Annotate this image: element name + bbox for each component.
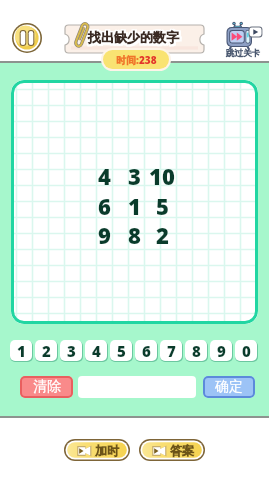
staticText: 跳过关卡 <box>226 48 260 59</box>
staticText: 4 <box>98 161 111 187</box>
staticText: 时间: <box>116 53 139 67</box>
staticText: 1 <box>17 341 26 361</box>
staticText: 9 <box>217 341 226 361</box>
staticText: 找出缺少的数字 <box>88 29 179 45</box>
button[interactable]: 清除 <box>20 376 73 398</box>
staticText: 加时 <box>95 443 119 458</box>
staticText: 找出缺少的数字 <box>90 29 181 45</box>
button[interactable]: 2 <box>35 340 58 362</box>
staticText: 找出缺少的数字 <box>90 31 181 47</box>
staticText: 2 <box>42 341 51 361</box>
staticText: 8 <box>128 220 141 246</box>
staticText: 5 <box>117 341 126 361</box>
staticText: 1 <box>128 191 141 217</box>
button[interactable]: 7 <box>160 340 183 362</box>
button[interactable]: 6 <box>135 340 158 362</box>
staticText: 8 <box>192 341 201 361</box>
staticText: 0 <box>242 341 251 361</box>
staticText: 6 <box>98 191 111 217</box>
staticText: 清除 <box>33 378 61 396</box>
staticText: 找出缺少的数字 <box>88 31 179 47</box>
staticText: 3 <box>128 161 141 187</box>
staticText: 找出缺少的数字 <box>87 31 178 47</box>
staticText: 找出缺少的数字 <box>87 29 178 45</box>
staticText: 9 <box>98 220 111 246</box>
button[interactable]: Skip level <box>222 16 269 60</box>
button[interactable]: 0 <box>235 340 258 362</box>
button[interactable]: 1 <box>10 340 33 362</box>
staticText: 7 <box>167 341 176 361</box>
staticText: 4 <box>92 341 101 361</box>
staticText: 答案 <box>170 443 194 458</box>
staticText: 6 <box>142 341 151 361</box>
staticText: 找出缺少的数字 <box>88 28 179 44</box>
button[interactable]: 答案 <box>139 439 205 461</box>
staticText: 确定 <box>215 378 243 396</box>
button[interactable]: 加时 <box>64 439 130 461</box>
staticText: 找出缺少的数字 <box>87 28 178 44</box>
staticText: 2 <box>156 220 169 246</box>
staticText: 10 <box>149 161 175 187</box>
staticText: 找出缺少的数字 <box>90 28 181 44</box>
button[interactable]: Pause <box>12 23 42 53</box>
staticText: 5 <box>156 191 169 217</box>
button[interactable]: 8 <box>185 340 208 362</box>
button[interactable]: 4 <box>85 340 108 362</box>
button[interactable]: 5 <box>110 340 133 362</box>
button[interactable]: 3 <box>60 340 83 362</box>
staticText: 3 <box>67 341 76 361</box>
staticText: 238 <box>139 53 157 67</box>
button[interactable]: 9 <box>210 340 233 362</box>
button[interactable]: 确定 <box>203 376 255 398</box>
button[interactable]: Answer input field <box>78 376 196 398</box>
